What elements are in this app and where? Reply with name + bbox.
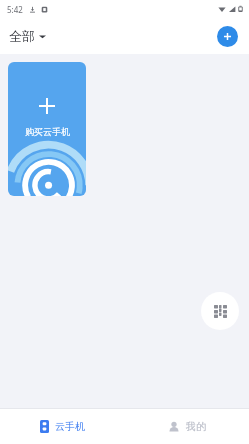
staticText: 购买云手机 (25, 126, 70, 137)
button[interactable]: Add (217, 26, 238, 47)
staticText: 云手机 (55, 420, 85, 433)
button[interactable]: 我的 (124, 409, 249, 444)
staticText: 全部 (9, 28, 35, 44)
button[interactable]: 云手机 (0, 409, 124, 444)
staticText: 我的 (186, 420, 206, 433)
button[interactable]: Apps grid (201, 292, 239, 330)
button[interactable]: 购买云手机 (8, 62, 86, 196)
button[interactable]: 全部 (9, 28, 46, 44)
staticText: 5:42 (7, 4, 23, 15)
